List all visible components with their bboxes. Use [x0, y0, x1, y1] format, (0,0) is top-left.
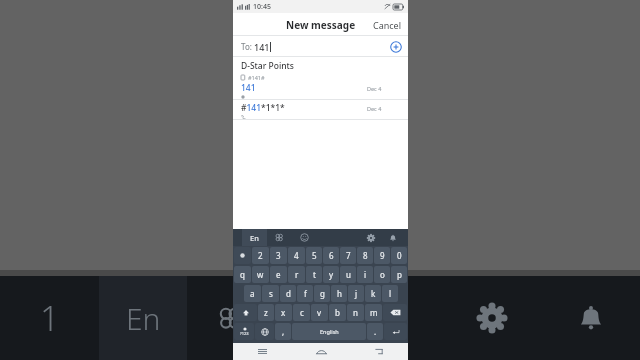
staticText: En — [250, 233, 259, 243]
button[interactable]: s — [262, 285, 279, 302]
button[interactable]: Shift — [234, 304, 257, 321]
button[interactable]: 0 — [391, 247, 407, 264]
button[interactable]: p — [391, 266, 407, 283]
button[interactable]: #141*1*1* — [233, 100, 408, 120]
button[interactable]: 7 — [340, 247, 356, 264]
button[interactable]: Back — [350, 343, 408, 360]
button[interactable]: x — [275, 304, 292, 321]
staticText: b — [335, 307, 340, 318]
staticText: . — [374, 326, 377, 337]
button[interactable]: Enter — [384, 323, 407, 340]
button[interactable]: Change language — [255, 323, 274, 340]
button[interactable]: l — [382, 285, 398, 302]
button[interactable]: 3 — [270, 247, 287, 264]
button[interactable]: . — [367, 323, 383, 340]
button[interactable]: To: — [233, 36, 408, 57]
button[interactable]: g — [314, 285, 330, 302]
staticText: 141 — [241, 82, 256, 94]
staticText: 7 — [346, 250, 351, 261]
button[interactable]: z — [258, 304, 274, 321]
button[interactable]: D-Star Points — [233, 57, 408, 80]
button[interactable]: 8 — [357, 247, 373, 264]
button[interactable]: n — [347, 304, 364, 321]
button[interactable]: Keyboard settings — [360, 229, 382, 246]
staticText: To: — [241, 41, 254, 52]
button[interactable]: c — [293, 304, 310, 321]
staticText: 10:45 — [253, 2, 271, 12]
button[interactable]: d — [280, 285, 296, 302]
button[interactable]: o — [374, 266, 390, 283]
button[interactable]: 9 — [374, 247, 390, 264]
staticText: m — [370, 307, 378, 318]
staticText: j — [355, 288, 358, 299]
staticText: New message — [286, 18, 356, 32]
button[interactable]: Symbols — [234, 323, 254, 340]
staticText: #141# — [248, 74, 265, 80]
button[interactable]: k — [365, 285, 381, 302]
button[interactable]: Home — [292, 343, 350, 360]
button[interactable]: t — [306, 266, 322, 283]
button[interactable]: New message — [286, 18, 356, 32]
staticText: 2 — [258, 250, 263, 261]
staticText: 8 — [363, 250, 368, 261]
button[interactable]: a — [244, 285, 261, 302]
staticText: o — [380, 269, 385, 280]
staticText: t — [313, 269, 316, 280]
staticText: 1 — [40, 295, 60, 341]
staticText: Cancel — [373, 19, 402, 31]
staticText: h — [337, 288, 342, 299]
button[interactable]: u — [340, 266, 356, 283]
staticText: n — [353, 307, 358, 318]
button[interactable]: y — [323, 266, 339, 283]
button[interactable]: Notifications — [382, 229, 404, 246]
staticText: l — [389, 288, 392, 299]
button[interactable]: Recents — [233, 343, 292, 360]
staticText: z — [264, 307, 268, 318]
staticText: 141 — [254, 41, 270, 53]
button[interactable]: q — [234, 266, 251, 283]
staticText: f — [304, 288, 307, 299]
staticText: i — [364, 269, 367, 280]
button[interactable]: i — [357, 266, 373, 283]
staticText: , — [282, 326, 285, 337]
staticText: #141*1*1* — [241, 102, 285, 114]
button[interactable]: English — [292, 323, 366, 340]
button[interactable]: w — [252, 266, 269, 283]
staticText: k — [371, 288, 376, 299]
button[interactable]: 141 — [233, 80, 408, 100]
button[interactable]: En — [242, 229, 267, 246]
button[interactable] — [234, 247, 251, 264]
staticText: English — [320, 328, 339, 335]
button[interactable]: Cancel — [373, 19, 402, 31]
staticText: 3 — [276, 250, 281, 261]
button[interactable]: , — [275, 323, 291, 340]
button[interactable]: b — [329, 304, 346, 321]
button[interactable]: Add recipient — [389, 40, 402, 53]
staticText: g — [320, 288, 325, 299]
button[interactable]: r — [288, 266, 305, 283]
button[interactable]: j — [348, 285, 364, 302]
button[interactable]: Stickers — [267, 229, 292, 246]
staticText: w — [257, 269, 264, 280]
button[interactable]: 2 — [252, 247, 269, 264]
staticText: En — [126, 298, 161, 339]
staticText: ?123 — [240, 331, 249, 336]
button[interactable]: Backspace — [383, 304, 407, 321]
button[interactable]: h — [331, 285, 347, 302]
staticText: x — [281, 307, 286, 318]
button[interactable]: m — [365, 304, 382, 321]
staticText: 6 — [329, 250, 334, 261]
button[interactable]: v — [311, 304, 328, 321]
staticText: u — [346, 269, 351, 280]
button[interactable]: 4 — [288, 247, 305, 264]
staticText: 4 — [294, 250, 299, 261]
staticText: 9 — [380, 250, 385, 261]
button[interactable]: 5 — [306, 247, 322, 264]
button[interactable]: f — [297, 285, 313, 302]
button[interactable]: Emoji — [292, 229, 317, 246]
button[interactable]: e — [270, 266, 287, 283]
staticText: a — [250, 288, 255, 299]
staticText: y — [329, 269, 334, 280]
staticText: 0 — [397, 250, 402, 261]
button[interactable]: 6 — [323, 247, 339, 264]
